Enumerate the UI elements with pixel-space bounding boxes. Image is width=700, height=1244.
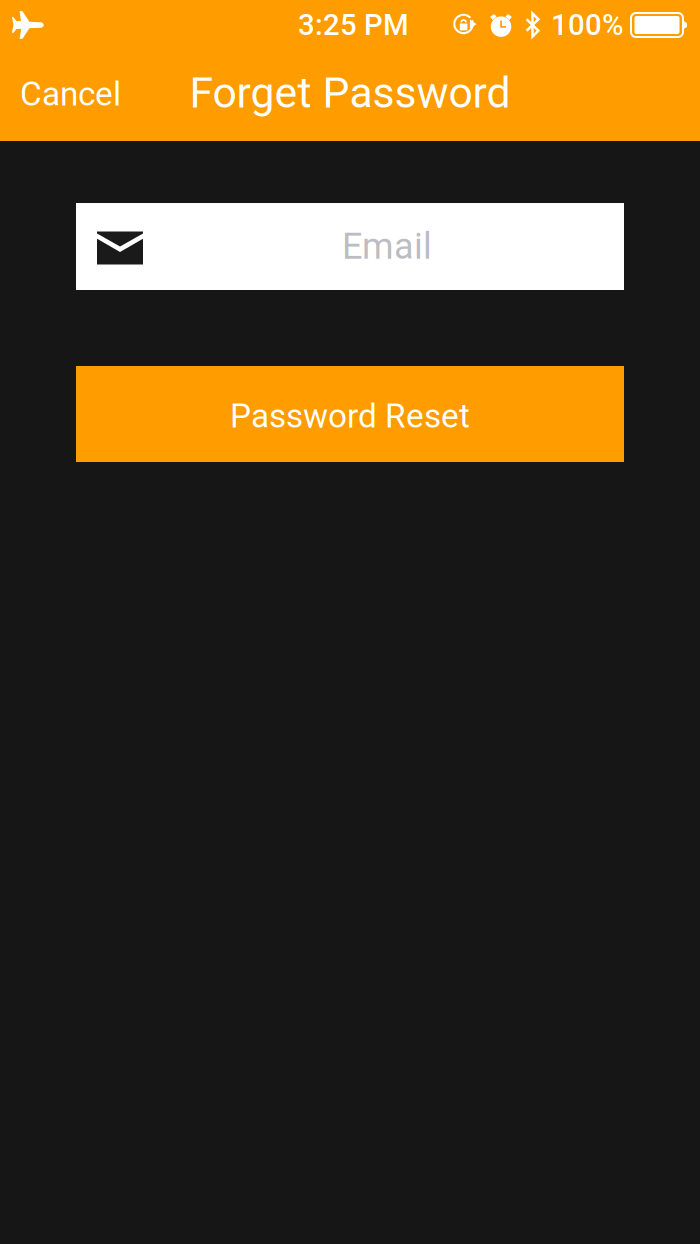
staticText: 3:25 PM [298,8,409,42]
staticText: Cancel [20,74,121,114]
button[interactable]: Password Reset [76,366,624,462]
staticText: Email [342,225,432,268]
button[interactable]: Cancel [0,50,135,141]
staticText: Password Reset [230,396,470,436]
staticText: Forget Password [189,68,510,118]
button[interactable]: Email [76,203,624,290]
staticText: 100% [551,8,624,42]
